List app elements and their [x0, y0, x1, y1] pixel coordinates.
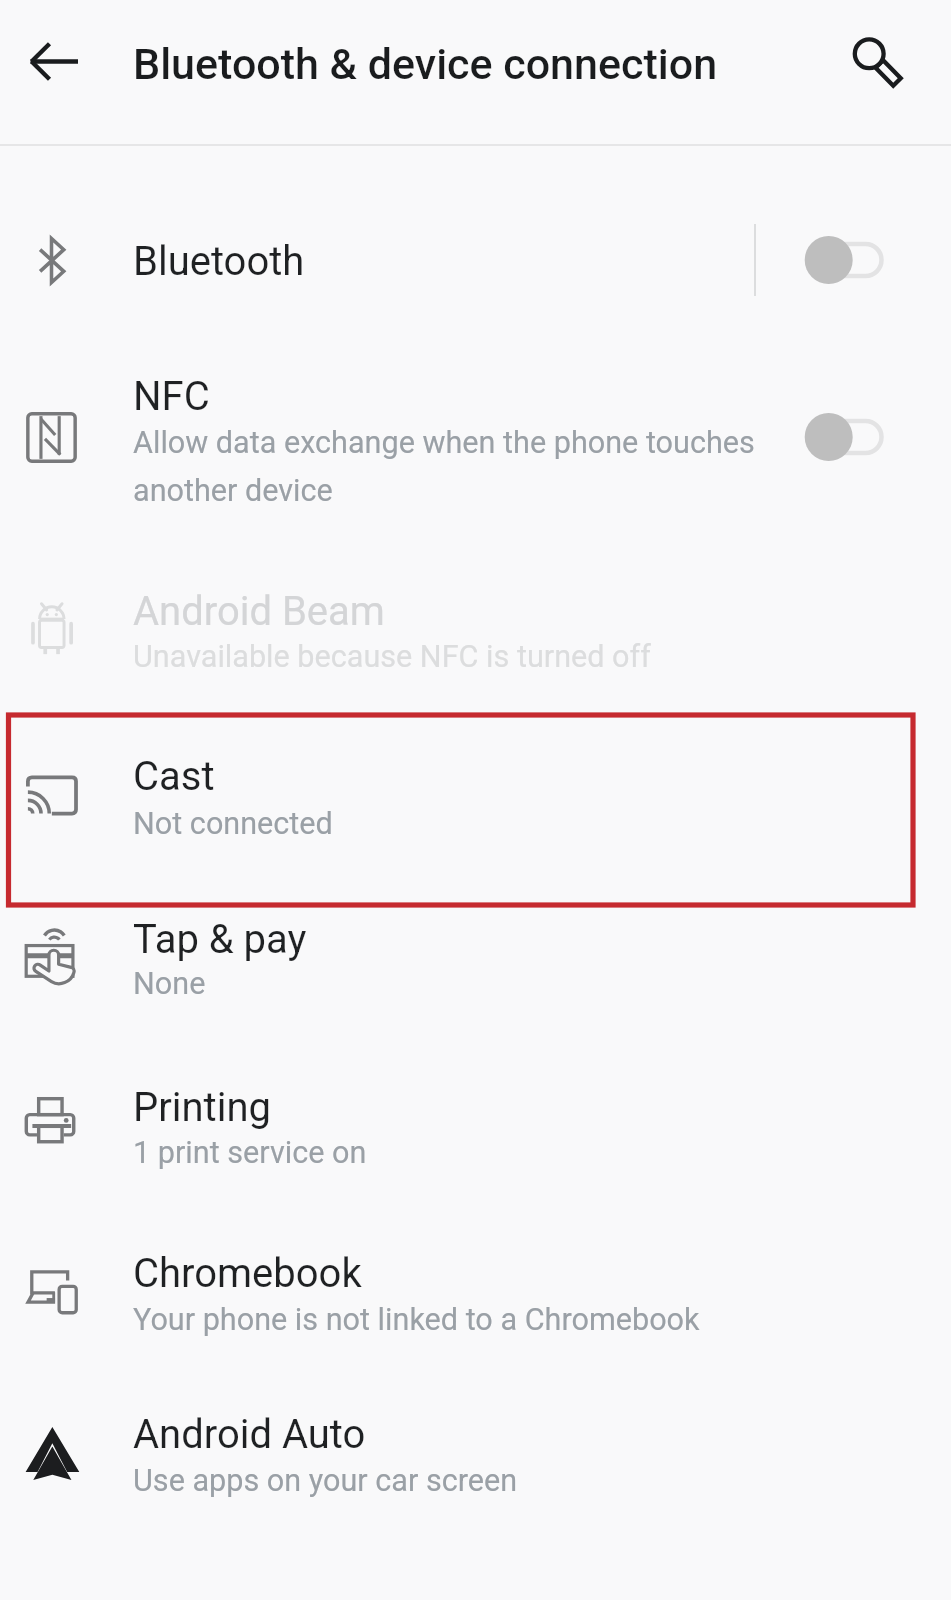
staticText: Android Beam — [133, 588, 385, 635]
staticText: Not connected — [133, 806, 333, 842]
staticText: None — [133, 966, 206, 1002]
button[interactable] — [0, 550, 951, 712]
button[interactable] — [0, 1040, 951, 1205]
staticText: another device — [133, 473, 333, 509]
button[interactable] — [0, 1205, 951, 1370]
button[interactable] — [0, 160, 951, 320]
button[interactable] — [0, 906, 951, 1040]
button[interactable]: Back — [1, 9, 106, 114]
staticText: NFC — [133, 373, 210, 420]
button[interactable] — [0, 712, 951, 906]
staticText: Bluetooth — [133, 238, 305, 285]
button[interactable]: Search — [826, 10, 932, 116]
button[interactable]: Toggle — [795, 220, 915, 300]
staticText: Your phone is not linked to a Chromebook — [133, 1302, 700, 1338]
staticText: Bluetooth & device connection — [133, 39, 718, 89]
staticText: Use apps on your car screen — [133, 1463, 518, 1499]
staticText: 1 print service on — [133, 1135, 367, 1171]
staticText: Android Auto — [133, 1411, 366, 1458]
staticText: Tap & pay — [133, 916, 307, 963]
staticText: Unavailable because NFC is turned off — [133, 639, 651, 675]
staticText: Cast — [133, 753, 215, 800]
staticText: Allow data exchange when the phone touch… — [133, 425, 755, 461]
button[interactable] — [0, 320, 951, 550]
staticText: Chromebook — [133, 1250, 362, 1297]
staticText: Printing — [133, 1084, 271, 1131]
button[interactable]: Toggle — [795, 397, 915, 477]
button[interactable] — [0, 1370, 951, 1530]
